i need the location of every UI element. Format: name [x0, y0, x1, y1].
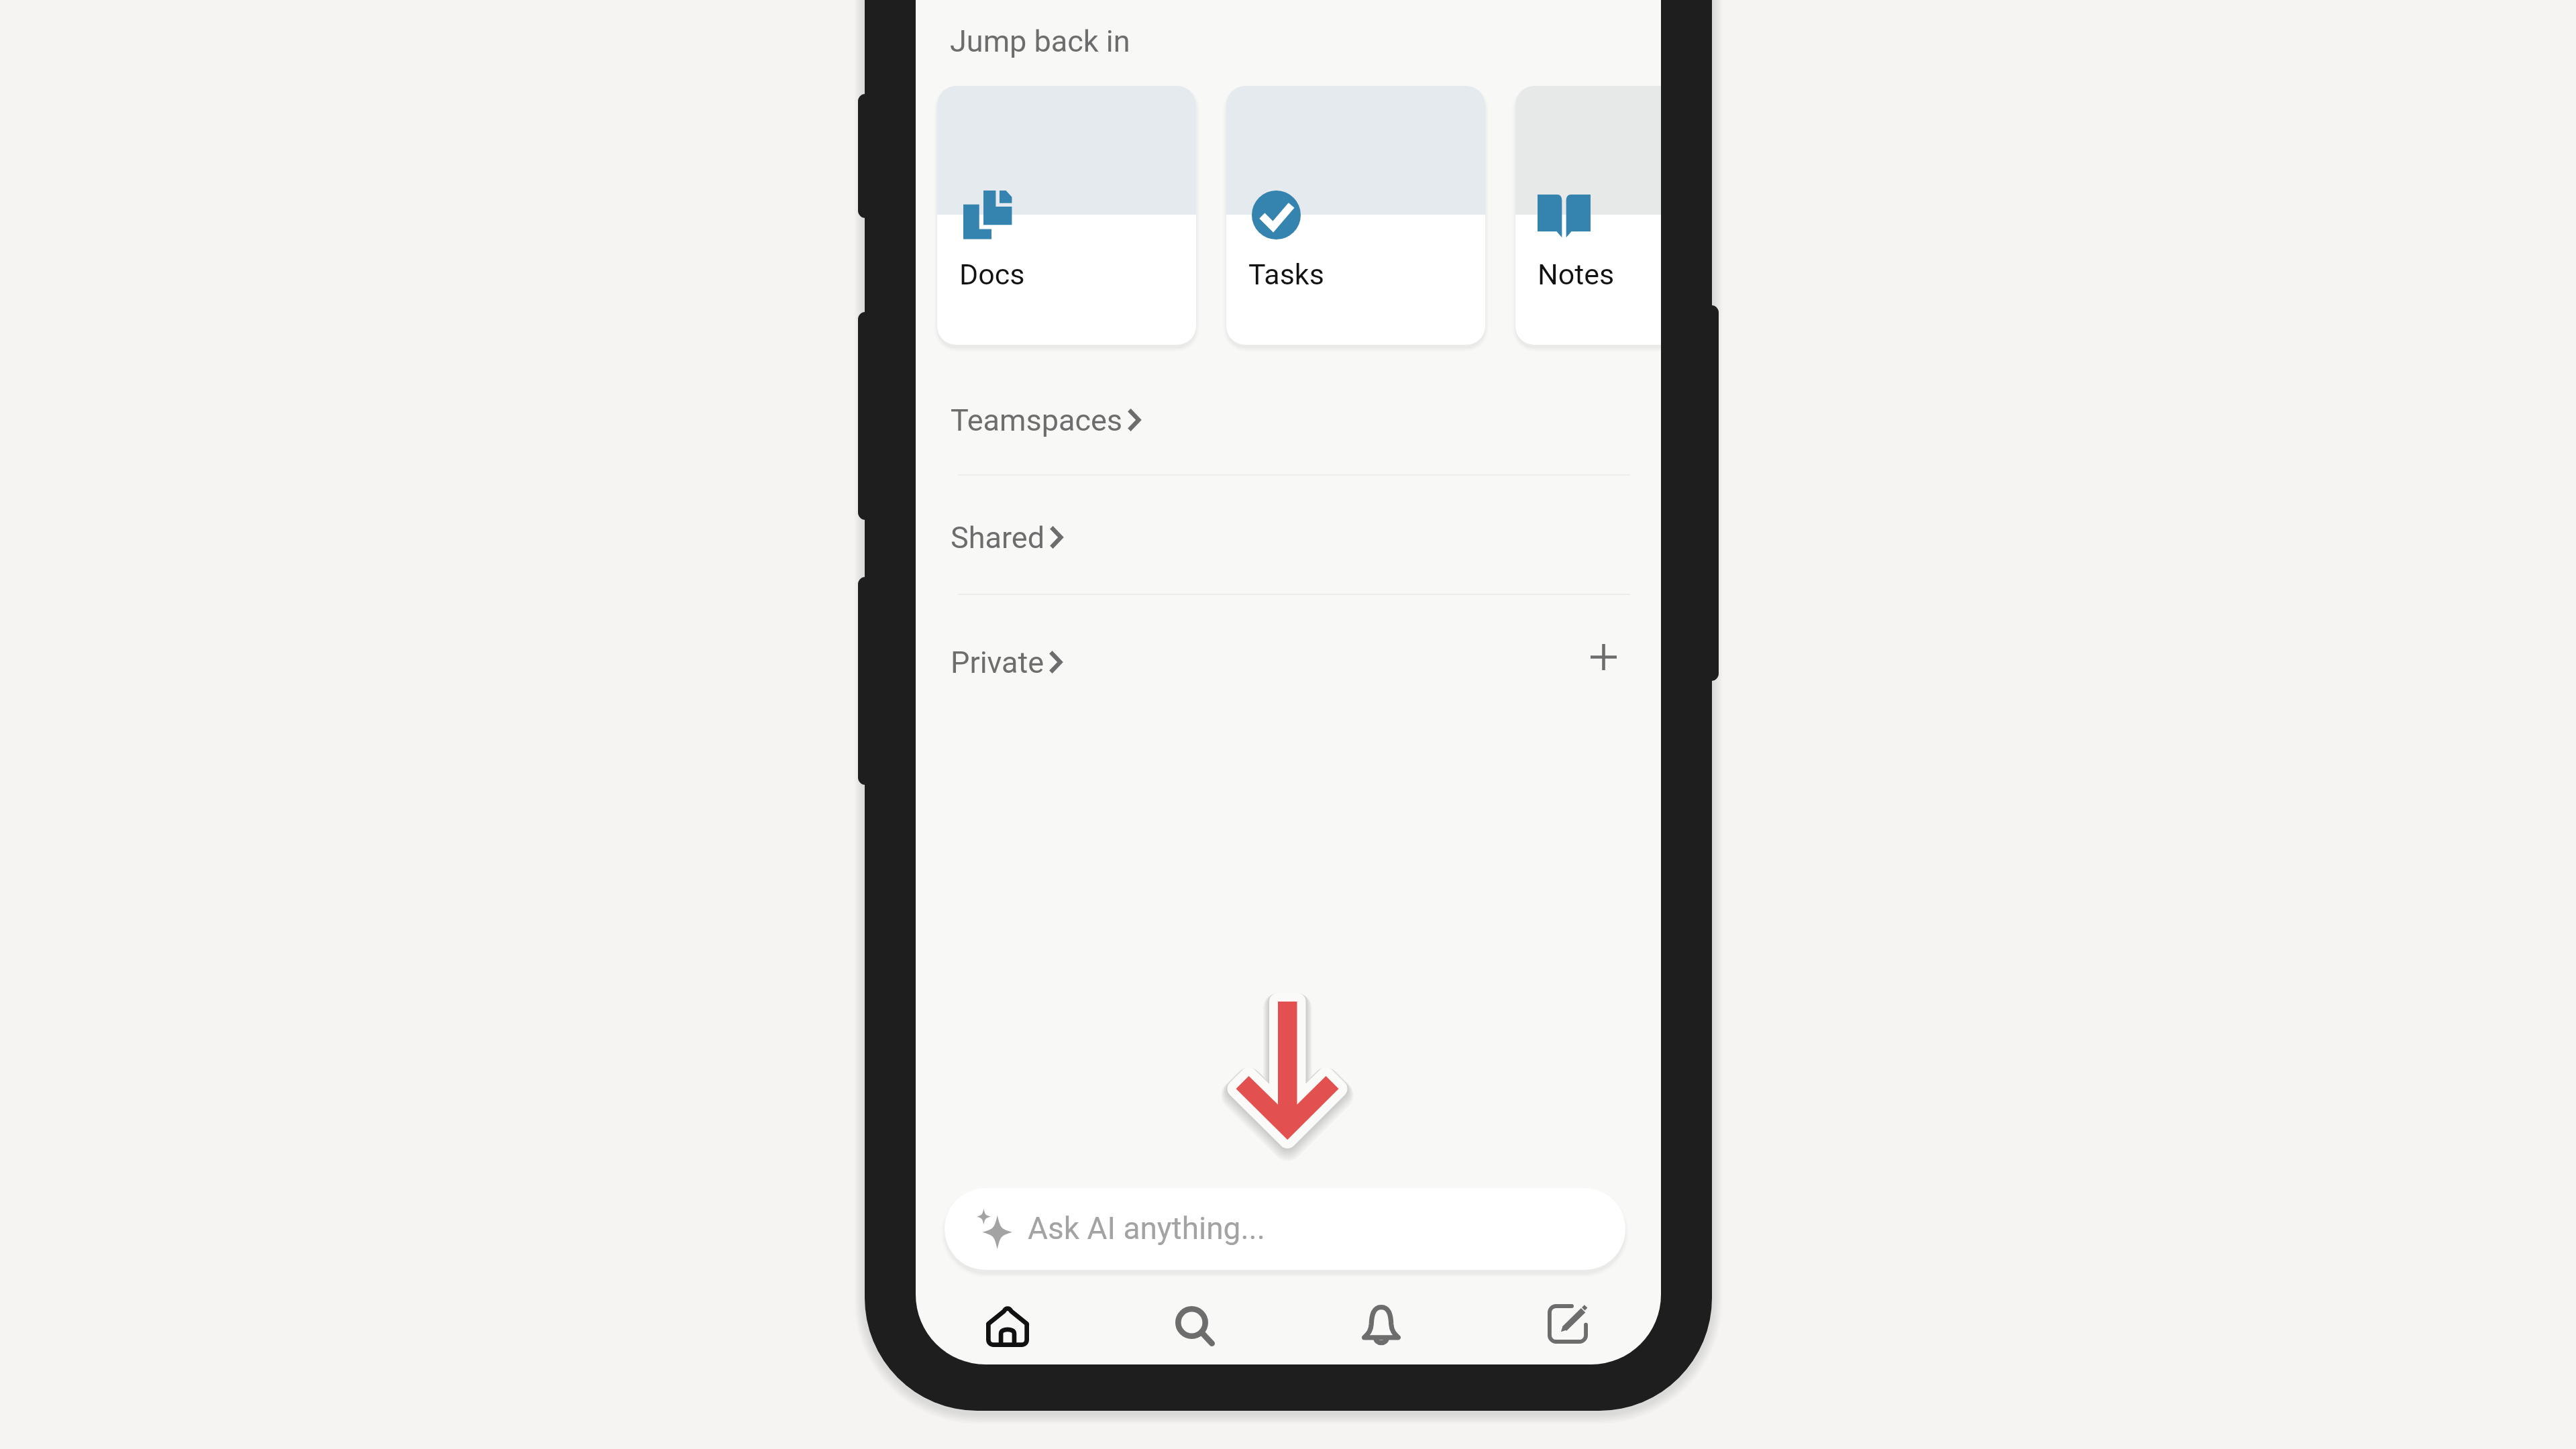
staticText: Private — [951, 645, 1044, 680]
staticText: Ask AI anything... — [1028, 1210, 1265, 1246]
staticText: Shared — [951, 520, 1045, 555]
button[interactable]: Teamspaces — [951, 388, 1141, 452]
staticText: Notes — [1538, 258, 1615, 291]
button[interactable]: Tasks — [1226, 86, 1485, 345]
button[interactable]: Add a private page — [1574, 627, 1633, 686]
button[interactable]: New page — [1517, 1279, 1618, 1364]
button[interactable]: Docs — [937, 86, 1196, 345]
button[interactable]: Home — [957, 1279, 1058, 1364]
button[interactable]: Search — [1144, 1279, 1245, 1364]
button[interactable]: Notifications — [1331, 1279, 1432, 1364]
button[interactable]: Shared — [951, 505, 1063, 570]
button[interactable]: Notes — [1515, 86, 1661, 345]
button[interactable]: Private — [951, 630, 1063, 694]
staticText: Teamspaces — [951, 402, 1123, 438]
staticText: Tasks — [1248, 258, 1324, 291]
staticText: Docs — [959, 258, 1025, 291]
button[interactable]: Ask AI anything... — [945, 1188, 1625, 1270]
staticText: Jump back in — [950, 23, 1130, 59]
